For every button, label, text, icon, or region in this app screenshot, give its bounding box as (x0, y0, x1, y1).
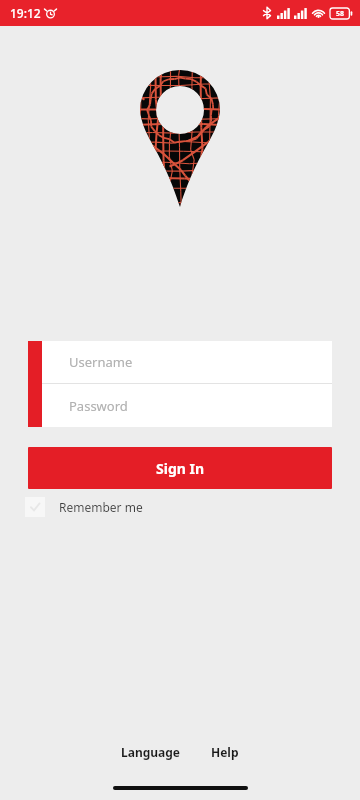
staticText: Help (211, 744, 239, 760)
staticText: Sign In (156, 459, 205, 478)
button[interactable]: Help (203, 738, 247, 766)
button[interactable]: Username (42, 341, 332, 383)
button[interactable]: Remember me checkbox (25, 497, 143, 517)
staticText: Password (69, 397, 128, 415)
staticText: Username (69, 353, 133, 371)
staticText: 19:12 (10, 5, 41, 21)
staticText: 58 (336, 9, 345, 19)
staticText: Remember me (59, 499, 143, 515)
button[interactable]: Sign In (28, 447, 332, 489)
staticText: Language (121, 744, 181, 760)
button[interactable]: Password (42, 384, 332, 427)
button[interactable]: Language (113, 738, 189, 766)
other: Remember me checkbox (25, 497, 45, 517)
